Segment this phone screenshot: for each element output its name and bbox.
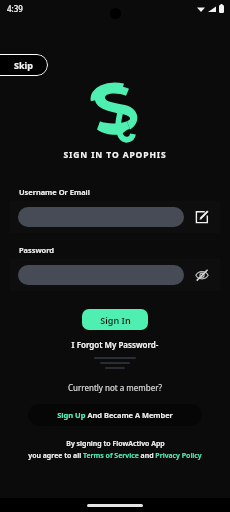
button[interactable]: Edit	[192, 207, 212, 227]
button[interactable]: Sign Up And Became A Member	[28, 404, 202, 426]
button[interactable]: you agree to all Terms of Service and Pr…	[28, 451, 202, 461]
button[interactable]: Skip	[0, 54, 48, 76]
staticText: Sign In	[100, 314, 131, 326]
staticText: Password	[19, 245, 55, 255]
staticText: Skip	[14, 59, 33, 71]
staticText: Username Or Email	[19, 187, 90, 197]
staticText: 4:39	[7, 3, 23, 14]
button[interactable]	[18, 207, 184, 227]
button[interactable]: Show password	[192, 265, 212, 285]
staticText: you agree to all Terms of Service and Pr…	[28, 451, 202, 461]
staticText: Sign Up And Became A Member	[57, 410, 173, 420]
button[interactable]	[18, 265, 184, 285]
staticText: Currently not a member?	[0, 382, 230, 393]
button[interactable]: Sign In	[82, 309, 148, 330]
staticText: SIGN IN TO APOPHIS	[0, 149, 230, 161]
staticText: By signing to FlowActivo App	[66, 439, 165, 449]
button[interactable]: I Forgot My Password-	[0, 339, 230, 350]
